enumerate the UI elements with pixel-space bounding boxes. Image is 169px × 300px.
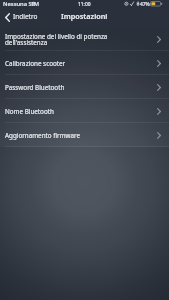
staticText: Impostazione del livello di potenza dell… xyxy=(5,32,157,46)
staticText: Nome Bluetooth xyxy=(5,107,157,116)
button[interactable]: Calibrazione scooter xyxy=(0,51,169,75)
staticText: Calibrazione scooter xyxy=(5,59,157,68)
staticText: 11:00 xyxy=(78,1,91,8)
button[interactable]: Nome Bluetooth xyxy=(0,99,169,123)
staticText: Nessuna SIM xyxy=(3,0,40,8)
button[interactable]: Impostazione del livello di potenza dell… xyxy=(0,27,169,51)
button[interactable]: Password Bluetooth xyxy=(0,75,169,99)
button[interactable]: Indietro xyxy=(0,10,44,25)
staticText: 47% xyxy=(140,1,150,8)
staticText: Aggiornamento firmware xyxy=(5,131,157,140)
staticText: Password Bluetooth xyxy=(5,83,157,92)
button[interactable]: Aggiornamento firmware xyxy=(0,123,169,147)
staticText: Impostazioni xyxy=(61,11,108,21)
staticText: Indietro xyxy=(13,12,38,21)
